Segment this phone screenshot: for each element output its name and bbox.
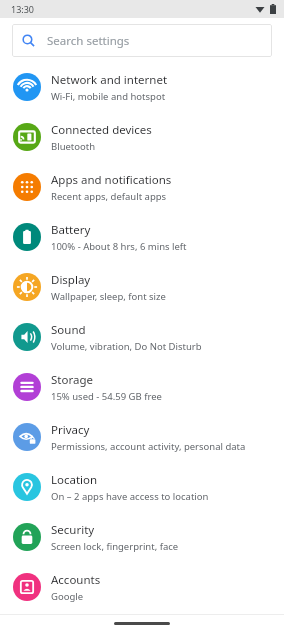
staticText: Display (51, 272, 91, 288)
button[interactable]: Storage (0, 362, 284, 412)
staticText: Apps and notifications (51, 172, 172, 188)
staticText: Google (51, 590, 84, 603)
button[interactable]: Security (0, 512, 284, 562)
button[interactable]: Connected devices (0, 112, 284, 162)
staticText: Search settings (47, 33, 130, 49)
button[interactable]: Location (0, 462, 284, 512)
staticText: Sound (51, 322, 86, 338)
staticText: Wallpaper, sleep, font size (51, 290, 166, 303)
button[interactable]: Display (0, 262, 284, 312)
button[interactable]: Search settings (12, 24, 272, 57)
button[interactable]: Network and internet (0, 62, 284, 112)
button[interactable]: Sound (0, 312, 284, 362)
staticText: 13:30 (11, 3, 35, 15)
staticText: Connected devices (51, 122, 152, 138)
button[interactable]: Accounts (0, 562, 284, 612)
staticText: Recent apps, default apps (51, 190, 167, 203)
button[interactable]: Battery (0, 212, 284, 262)
button[interactable]: Apps and notifications (0, 162, 284, 212)
staticText: Storage (51, 372, 93, 388)
staticText: Privacy (51, 422, 90, 438)
staticText: Volume, vibration, Do Not Disturb (51, 340, 202, 353)
staticText: 15% used - 54.59 GB free (51, 390, 162, 403)
staticText: Bluetooth (51, 140, 96, 153)
staticText: Permissions, account activity, personal … (51, 440, 246, 453)
staticText: Wi-Fi, mobile and hotspot (51, 90, 166, 103)
staticText: Security (51, 522, 95, 538)
staticText: Accounts (51, 572, 101, 588)
button[interactable]: Privacy (0, 412, 284, 462)
staticText: Battery (51, 222, 91, 238)
staticText: Location (51, 472, 98, 488)
staticText: On – 2 apps have access to location (51, 490, 209, 503)
staticText: 100% - About 8 hrs, 6 mins left (51, 240, 187, 253)
staticText: Network and internet (51, 72, 168, 88)
staticText: Screen lock, fingerprint, face (51, 540, 179, 553)
